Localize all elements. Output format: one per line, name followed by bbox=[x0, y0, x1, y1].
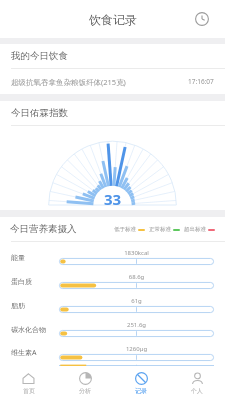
staticText: 251.6g bbox=[59, 321, 214, 329]
button[interactable]: 首页 bbox=[0, 366, 57, 400]
staticText: 维生素A bbox=[11, 348, 37, 358]
button[interactable]: 维生素B1 bbox=[0, 365, 225, 366]
staticText: 正常标准 bbox=[149, 226, 171, 233]
button[interactable]: 记录 bbox=[113, 366, 169, 400]
staticText: 饮食记录 bbox=[89, 12, 137, 27]
staticText: 61g bbox=[59, 297, 214, 305]
staticText: 17:16:07 bbox=[188, 77, 214, 86]
staticText: 1.37mg bbox=[59, 365, 214, 366]
staticText: 我的今日饮食 bbox=[11, 50, 68, 62]
staticText: 超级抗氧吞拿鱼杂粮饭纤体(215克) bbox=[11, 77, 188, 87]
staticText: 1260µg bbox=[59, 345, 214, 353]
button[interactable]: 碳水化合物 bbox=[0, 317, 225, 341]
staticText: 1830kcal bbox=[59, 249, 214, 257]
button[interactable]: History bbox=[189, 6, 215, 32]
button[interactable]: 个人 bbox=[169, 366, 225, 400]
staticText: 今日佑霖指数 bbox=[11, 107, 68, 119]
button[interactable]: 今日佑霖指数 bbox=[0, 101, 225, 125]
button[interactable]: 蛋白质 bbox=[0, 269, 225, 293]
staticText: 能量 bbox=[11, 253, 25, 262]
staticText: 记录 bbox=[135, 387, 147, 395]
button[interactable]: 维生素A bbox=[0, 341, 225, 365]
staticText: 蛋白质 bbox=[11, 277, 32, 286]
staticText: 33 bbox=[104, 189, 122, 209]
staticText: 脂肪 bbox=[11, 301, 25, 310]
button[interactable]: 能量 bbox=[0, 245, 225, 269]
staticText: 个人 bbox=[191, 387, 203, 395]
staticText: 低于标准 bbox=[114, 226, 136, 233]
staticText: 分析 bbox=[79, 387, 91, 395]
staticText: 68.6g bbox=[59, 273, 214, 281]
button[interactable]: 超级抗氧吞拿鱼杂粮饭纤体(215克) bbox=[0, 69, 225, 94]
staticText: 碳水化合物 bbox=[11, 325, 46, 334]
button[interactable]: 我的今日饮食 bbox=[0, 44, 225, 68]
button[interactable]: 分析 bbox=[57, 366, 113, 400]
staticText: 今日营养素摄入 bbox=[10, 223, 77, 235]
staticText: 超出标准 bbox=[184, 226, 206, 233]
button[interactable]: 脂肪 bbox=[0, 293, 225, 317]
staticText: 首页 bbox=[23, 387, 35, 395]
